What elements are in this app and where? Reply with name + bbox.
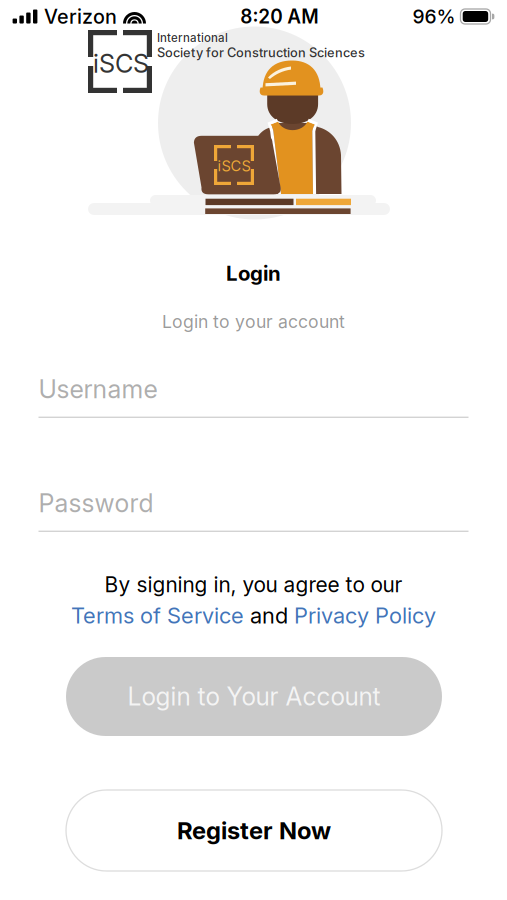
staticText: 8:20 AM [240, 5, 318, 28]
button[interactable]: Login to Your Account [66, 657, 442, 736]
staticText: Society for Construction Sciences [157, 45, 365, 60]
button[interactable]: Privacy Policy [294, 602, 436, 629]
staticText: iSCS [217, 157, 250, 175]
button[interactable]: Terms of Service [71, 602, 244, 629]
staticText: Login to your account [162, 311, 345, 332]
staticText: Login [226, 261, 281, 286]
staticText: iSCS [93, 48, 149, 79]
staticText: By signing in, you agree to our [104, 572, 402, 597]
staticText: International [157, 31, 228, 45]
staticText: Privacy Policy [294, 602, 436, 629]
staticText: Username [38, 374, 157, 404]
staticText: Register Now [177, 816, 331, 845]
staticText: Verizon [44, 5, 117, 28]
staticText: Terms of Service [71, 602, 244, 629]
staticText: Password [38, 488, 153, 518]
staticText: Login to Your Account [127, 682, 380, 711]
staticText: and [244, 602, 294, 629]
staticText: 96% [412, 5, 455, 28]
button[interactable]: Register Now [66, 790, 442, 871]
